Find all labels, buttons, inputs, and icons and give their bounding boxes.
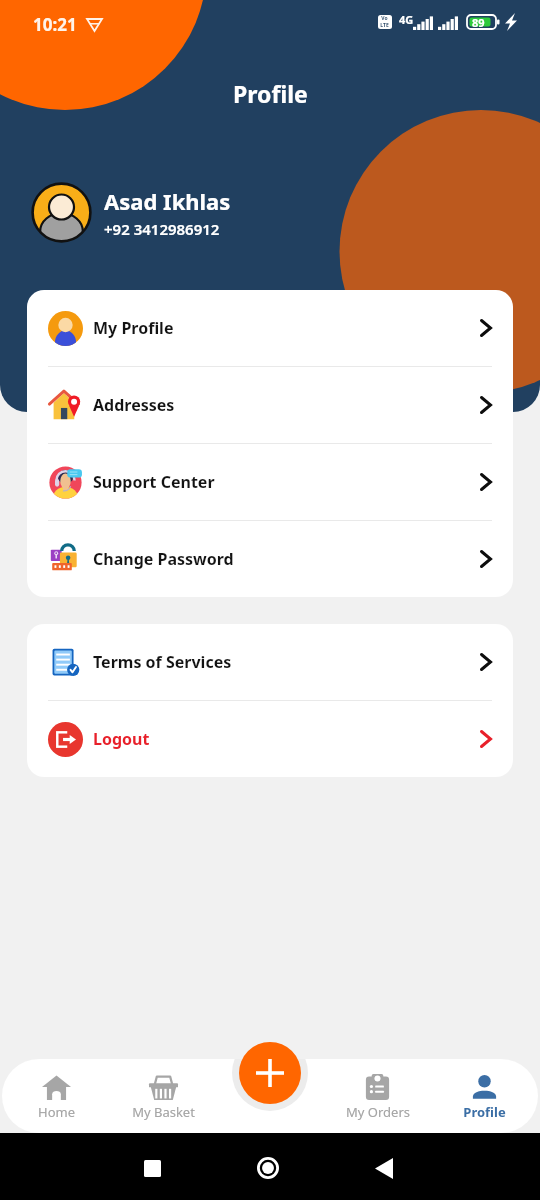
staticText: Change Password (93, 548, 234, 570)
button[interactable]: Addresses (27, 367, 513, 443)
staticText: Home (38, 1103, 75, 1121)
staticText: Support Center (93, 471, 215, 493)
button[interactable]: Profile (431, 1061, 538, 1131)
button[interactable]: My Orders (324, 1061, 431, 1131)
button[interactable]: Change Password (27, 521, 513, 597)
staticText: Vo LTE (380, 15, 389, 28)
staticText: My Basket (132, 1103, 195, 1121)
staticText: +92 3412986912 (104, 219, 220, 239)
staticText: 10:21 (33, 13, 77, 36)
button[interactable]: Home (246, 1146, 290, 1190)
button[interactable]: Home (2, 1061, 110, 1131)
staticText: My Orders (346, 1103, 410, 1121)
staticText: Logout (93, 728, 150, 750)
staticText: Profile (233, 78, 308, 109)
staticText: My Profile (93, 317, 174, 339)
staticText: Addresses (93, 394, 175, 416)
staticText: Profile (463, 1103, 506, 1121)
button[interactable]: Recents (130, 1146, 174, 1190)
staticText: 89 (472, 15, 485, 30)
staticText: Asad Ikhlas (104, 186, 231, 216)
button[interactable]: Logout (27, 701, 513, 777)
button[interactable]: My Basket (110, 1061, 217, 1131)
button[interactable]: My Profile (27, 290, 513, 366)
button[interactable]: Back (362, 1146, 406, 1190)
button[interactable]: Support Center (27, 444, 513, 520)
staticText: 4G (399, 12, 414, 27)
button[interactable]: Add (239, 1042, 301, 1104)
staticText: Terms of Services (93, 651, 232, 673)
button[interactable]: Terms of Services (27, 624, 513, 700)
